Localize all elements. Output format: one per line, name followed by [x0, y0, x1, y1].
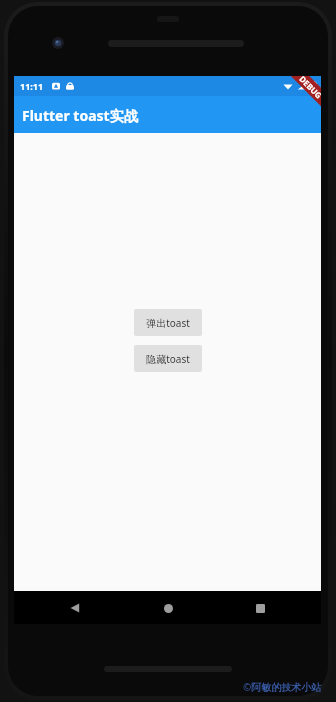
button[interactable]: Back [62, 595, 88, 621]
staticText: DEBUG [297, 76, 321, 101]
staticText: 弹出toast [146, 316, 190, 330]
staticText: 隐藏toast [146, 352, 190, 366]
staticText: 11:11 [20, 80, 44, 92]
staticText: ©阿敏的技术小站 [243, 680, 322, 694]
staticText: Flutter toast实战 [22, 106, 138, 125]
button[interactable]: Recent apps [247, 595, 273, 621]
button[interactable]: Home [155, 595, 181, 621]
button[interactable]: 隐藏toast [134, 345, 202, 372]
button[interactable]: 弹出toast [134, 309, 202, 336]
